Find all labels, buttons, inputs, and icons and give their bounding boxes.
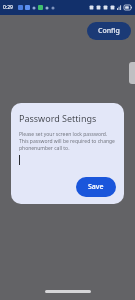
- button[interactable]: Save: [76, 177, 116, 197]
- staticText: Save: [88, 182, 104, 192]
- button[interactable]: [19, 154, 116, 166]
- button[interactable]: Config: [87, 22, 131, 40]
- staticText: 0:29: [3, 4, 13, 11]
- staticText: Config: [98, 26, 120, 36]
- staticText: Please set your screen lock password. Th…: [19, 131, 116, 152]
- staticText: Password Settings: [19, 112, 97, 124]
